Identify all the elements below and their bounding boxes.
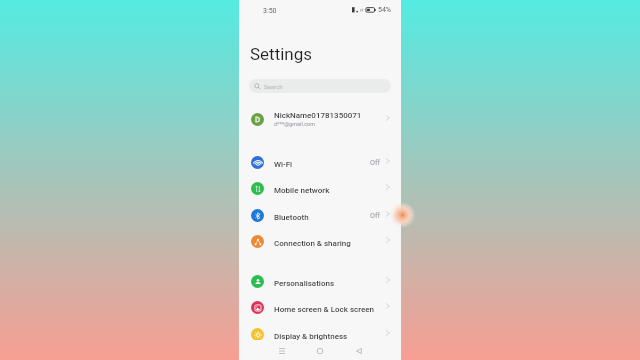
button[interactable]: Wi-Fi — [239, 149, 401, 175]
button[interactable]: Back — [352, 344, 366, 358]
staticText: Settings — [250, 44, 313, 64]
button[interactable]: Personalisations — [239, 268, 401, 294]
staticText: D — [255, 115, 261, 124]
button[interactable]: Recents — [275, 344, 289, 358]
staticText: Personalisations — [274, 279, 384, 288]
staticText: Search — [264, 83, 283, 90]
staticText: Connection & sharing — [274, 239, 384, 248]
button[interactable]: Home — [313, 344, 327, 358]
button[interactable]: Bluetooth — [239, 202, 401, 228]
button[interactable]: Home screen & Lock screen — [239, 294, 401, 320]
staticText: d***@gmail.com — [274, 121, 316, 127]
staticText: Off — [370, 211, 380, 219]
staticText: Bluetooth — [274, 213, 370, 222]
staticText: Wi-Fi — [274, 160, 370, 169]
staticText: NickName01781350071 — [274, 111, 362, 120]
button[interactable]: Display & brightness — [239, 321, 401, 347]
staticText: Mobile network — [274, 186, 384, 195]
staticText: Home screen & Lock screen — [274, 305, 384, 314]
button[interactable]: D — [239, 106, 401, 132]
staticText: Display & brightness — [274, 332, 384, 341]
staticText: 3:50 — [263, 7, 277, 15]
button[interactable]: Connection & sharing — [239, 228, 401, 254]
staticText: 54% — [378, 6, 391, 14]
button[interactable]: Mobile network — [239, 175, 401, 201]
staticText: Off — [370, 158, 380, 166]
button[interactable]: Search — [249, 79, 391, 93]
